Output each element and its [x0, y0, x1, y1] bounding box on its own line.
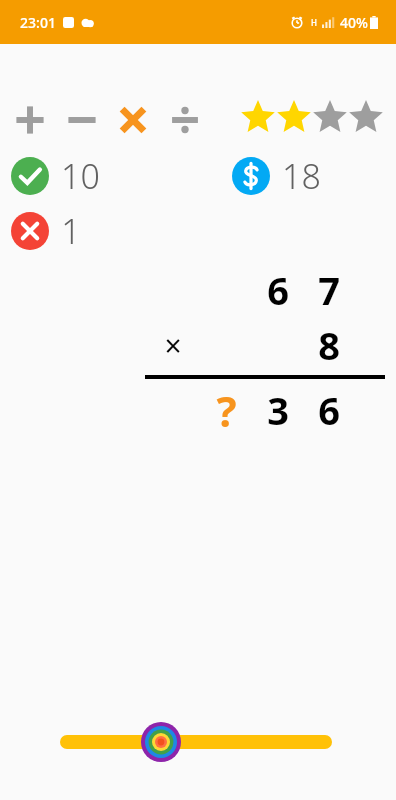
button[interactable]: Level star [346, 97, 386, 137]
staticText: 6 [318, 384, 340, 436]
button[interactable]: Coins [232, 153, 321, 199]
staticText: 6 [267, 264, 289, 316]
button[interactable]: Level star [238, 97, 278, 137]
button[interactable]: Level star [274, 97, 314, 137]
button[interactable]: Addition [9, 99, 51, 141]
button[interactable]: Division [164, 99, 206, 141]
button[interactable]: Subtraction [61, 99, 103, 141]
staticText: 40% [340, 13, 368, 32]
button[interactable]: Wrong answers [11, 208, 81, 254]
button[interactable]: Level star [310, 97, 350, 137]
button[interactable]: Difficulty slider [0, 716, 396, 772]
staticText: 10 [61, 153, 100, 199]
staticText: 3 [267, 384, 289, 436]
staticText: 7 [318, 264, 340, 316]
button[interactable]: Multiplication [112, 99, 154, 141]
button[interactable]: Correct answers [11, 153, 100, 199]
staticText: H [311, 17, 317, 28]
staticText: 1 [61, 208, 81, 254]
staticText: 8 [318, 319, 340, 371]
staticText: ? [216, 382, 237, 434]
staticText: 23:01 [20, 13, 56, 32]
staticText: 18 [282, 153, 321, 199]
staticText: × [164, 325, 182, 366]
